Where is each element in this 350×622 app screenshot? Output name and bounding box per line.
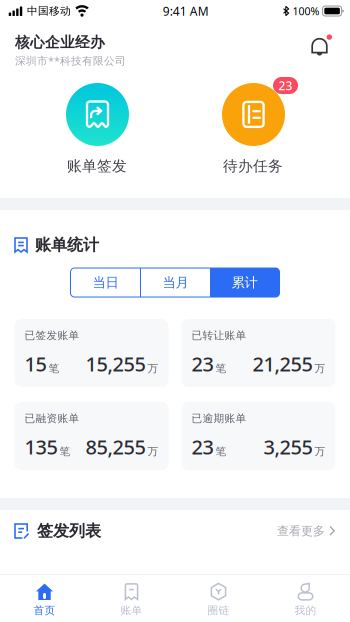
staticText: 首页 — [33, 604, 55, 617]
button[interactable]: 圈链 — [175, 575, 262, 622]
staticText: 当日 — [92, 274, 118, 291]
staticText: 15,255 — [85, 350, 145, 377]
staticText: 累计 — [231, 274, 257, 291]
staticText: 核心企业经办 — [15, 33, 105, 51]
staticText: 圈链 — [207, 604, 229, 617]
button[interactable]: 账单 — [88, 575, 175, 622]
staticText: 23 — [191, 350, 213, 377]
button[interactable]: 账单签发 — [38, 77, 156, 175]
staticText: 万 — [314, 362, 325, 375]
button[interactable]: 当月 — [141, 268, 210, 297]
staticText: 85,255 — [85, 433, 145, 460]
staticText: 我的 — [294, 604, 316, 617]
button[interactable]: 23 — [194, 77, 312, 175]
staticText: 笔 — [48, 362, 59, 375]
staticText: 签发列表 — [37, 521, 101, 541]
button[interactable]: 首页 — [1, 575, 88, 622]
staticText: 已转让账单 — [191, 329, 246, 342]
staticText: 100% — [293, 4, 320, 18]
staticText: 账单签发 — [67, 157, 127, 175]
button[interactable]: 累计 — [210, 268, 279, 297]
staticText: 深圳市**科技有限公司 — [15, 53, 126, 68]
staticText: 23 — [191, 433, 213, 460]
staticText: 23 — [278, 77, 292, 93]
staticText: 查看更多 — [277, 524, 325, 538]
staticText: 待办任务 — [223, 157, 283, 175]
button[interactable]: 查看更多 — [277, 516, 336, 546]
staticText: 当月 — [162, 274, 188, 291]
staticText: 账单统计 — [35, 235, 99, 255]
button[interactable]: 当日 — [71, 268, 140, 297]
staticText: 万 — [147, 362, 158, 375]
staticText: 135 — [24, 433, 57, 460]
staticText: 已签发账单 — [24, 329, 79, 342]
staticText: 万 — [147, 445, 158, 458]
staticText: 已融资账单 — [24, 412, 79, 425]
button[interactable]: 通知 — [304, 28, 338, 62]
staticText: 3,255 — [263, 433, 312, 460]
staticText: 账单 — [120, 604, 142, 617]
staticText: 15 — [24, 350, 46, 377]
staticText: 笔 — [215, 362, 226, 375]
staticText: 已逾期账单 — [191, 412, 246, 425]
button[interactable]: 我的 — [262, 575, 349, 622]
staticText: 9:41 AM — [163, 3, 209, 19]
staticText: 万 — [314, 445, 325, 458]
staticText: 笔 — [215, 445, 226, 458]
staticText: 笔 — [59, 445, 70, 458]
staticText: 中国移动 — [27, 4, 71, 17]
staticText: 21,255 — [252, 350, 312, 377]
